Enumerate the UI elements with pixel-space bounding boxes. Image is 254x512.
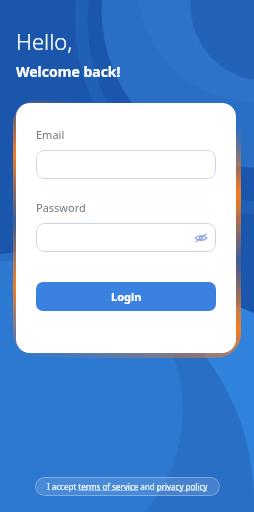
- button[interactable]: [36, 150, 216, 179]
- staticText: Welcome back!: [16, 62, 121, 81]
- button[interactable]: Show password: [36, 223, 216, 252]
- button[interactable]: Show password: [193, 230, 209, 246]
- staticText: Email: [36, 127, 65, 142]
- staticText: Password: [36, 200, 86, 215]
- button[interactable]: I accept terms of service and privacy po…: [35, 477, 220, 496]
- staticText: Hello,: [16, 26, 73, 56]
- staticText: I accept terms of service and privacy po…: [47, 481, 208, 492]
- staticText: Login: [111, 289, 142, 304]
- button[interactable]: Login: [36, 282, 216, 311]
